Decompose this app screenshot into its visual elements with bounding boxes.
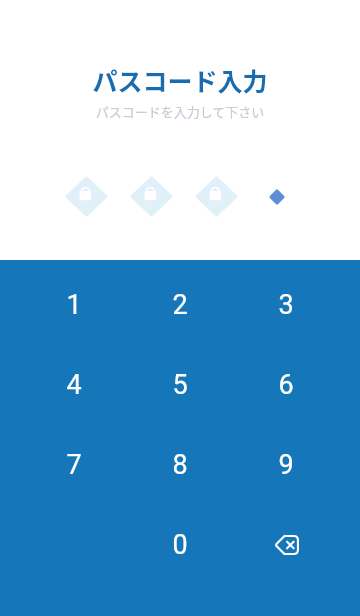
button[interactable]: Entered digit xyxy=(129,174,174,219)
button[interactable]: Entered digit xyxy=(194,174,239,219)
button[interactable]: 0 xyxy=(144,509,216,581)
staticText: 6 xyxy=(278,369,294,401)
button[interactable]: 8 xyxy=(144,429,216,501)
staticText: 7 xyxy=(66,449,82,481)
button[interactable]: Pending digit xyxy=(268,188,286,206)
button[interactable]: 5 xyxy=(144,349,216,421)
staticText: 1 xyxy=(66,289,82,321)
staticText: 8 xyxy=(172,449,188,481)
button[interactable]: 9 xyxy=(250,429,322,501)
staticText: 0 xyxy=(172,529,188,561)
button[interactable]: 4 xyxy=(38,349,110,421)
staticText: パスコード入力 xyxy=(0,62,360,98)
button[interactable]: 7 xyxy=(38,429,110,501)
staticText: 5 xyxy=(172,369,188,401)
button[interactable]: 1 xyxy=(38,269,110,341)
button[interactable]: Backspace xyxy=(250,509,322,581)
staticText: 4 xyxy=(66,369,82,401)
staticText: 2 xyxy=(172,289,188,321)
staticText: パスコードを入力して下さい xyxy=(0,102,360,121)
button[interactable]: 2 xyxy=(144,269,216,341)
staticText: 3 xyxy=(278,289,294,321)
button[interactable]: 6 xyxy=(250,349,322,421)
staticText: 9 xyxy=(278,449,294,481)
button[interactable]: Entered digit xyxy=(64,174,109,219)
button[interactable]: 3 xyxy=(250,269,322,341)
